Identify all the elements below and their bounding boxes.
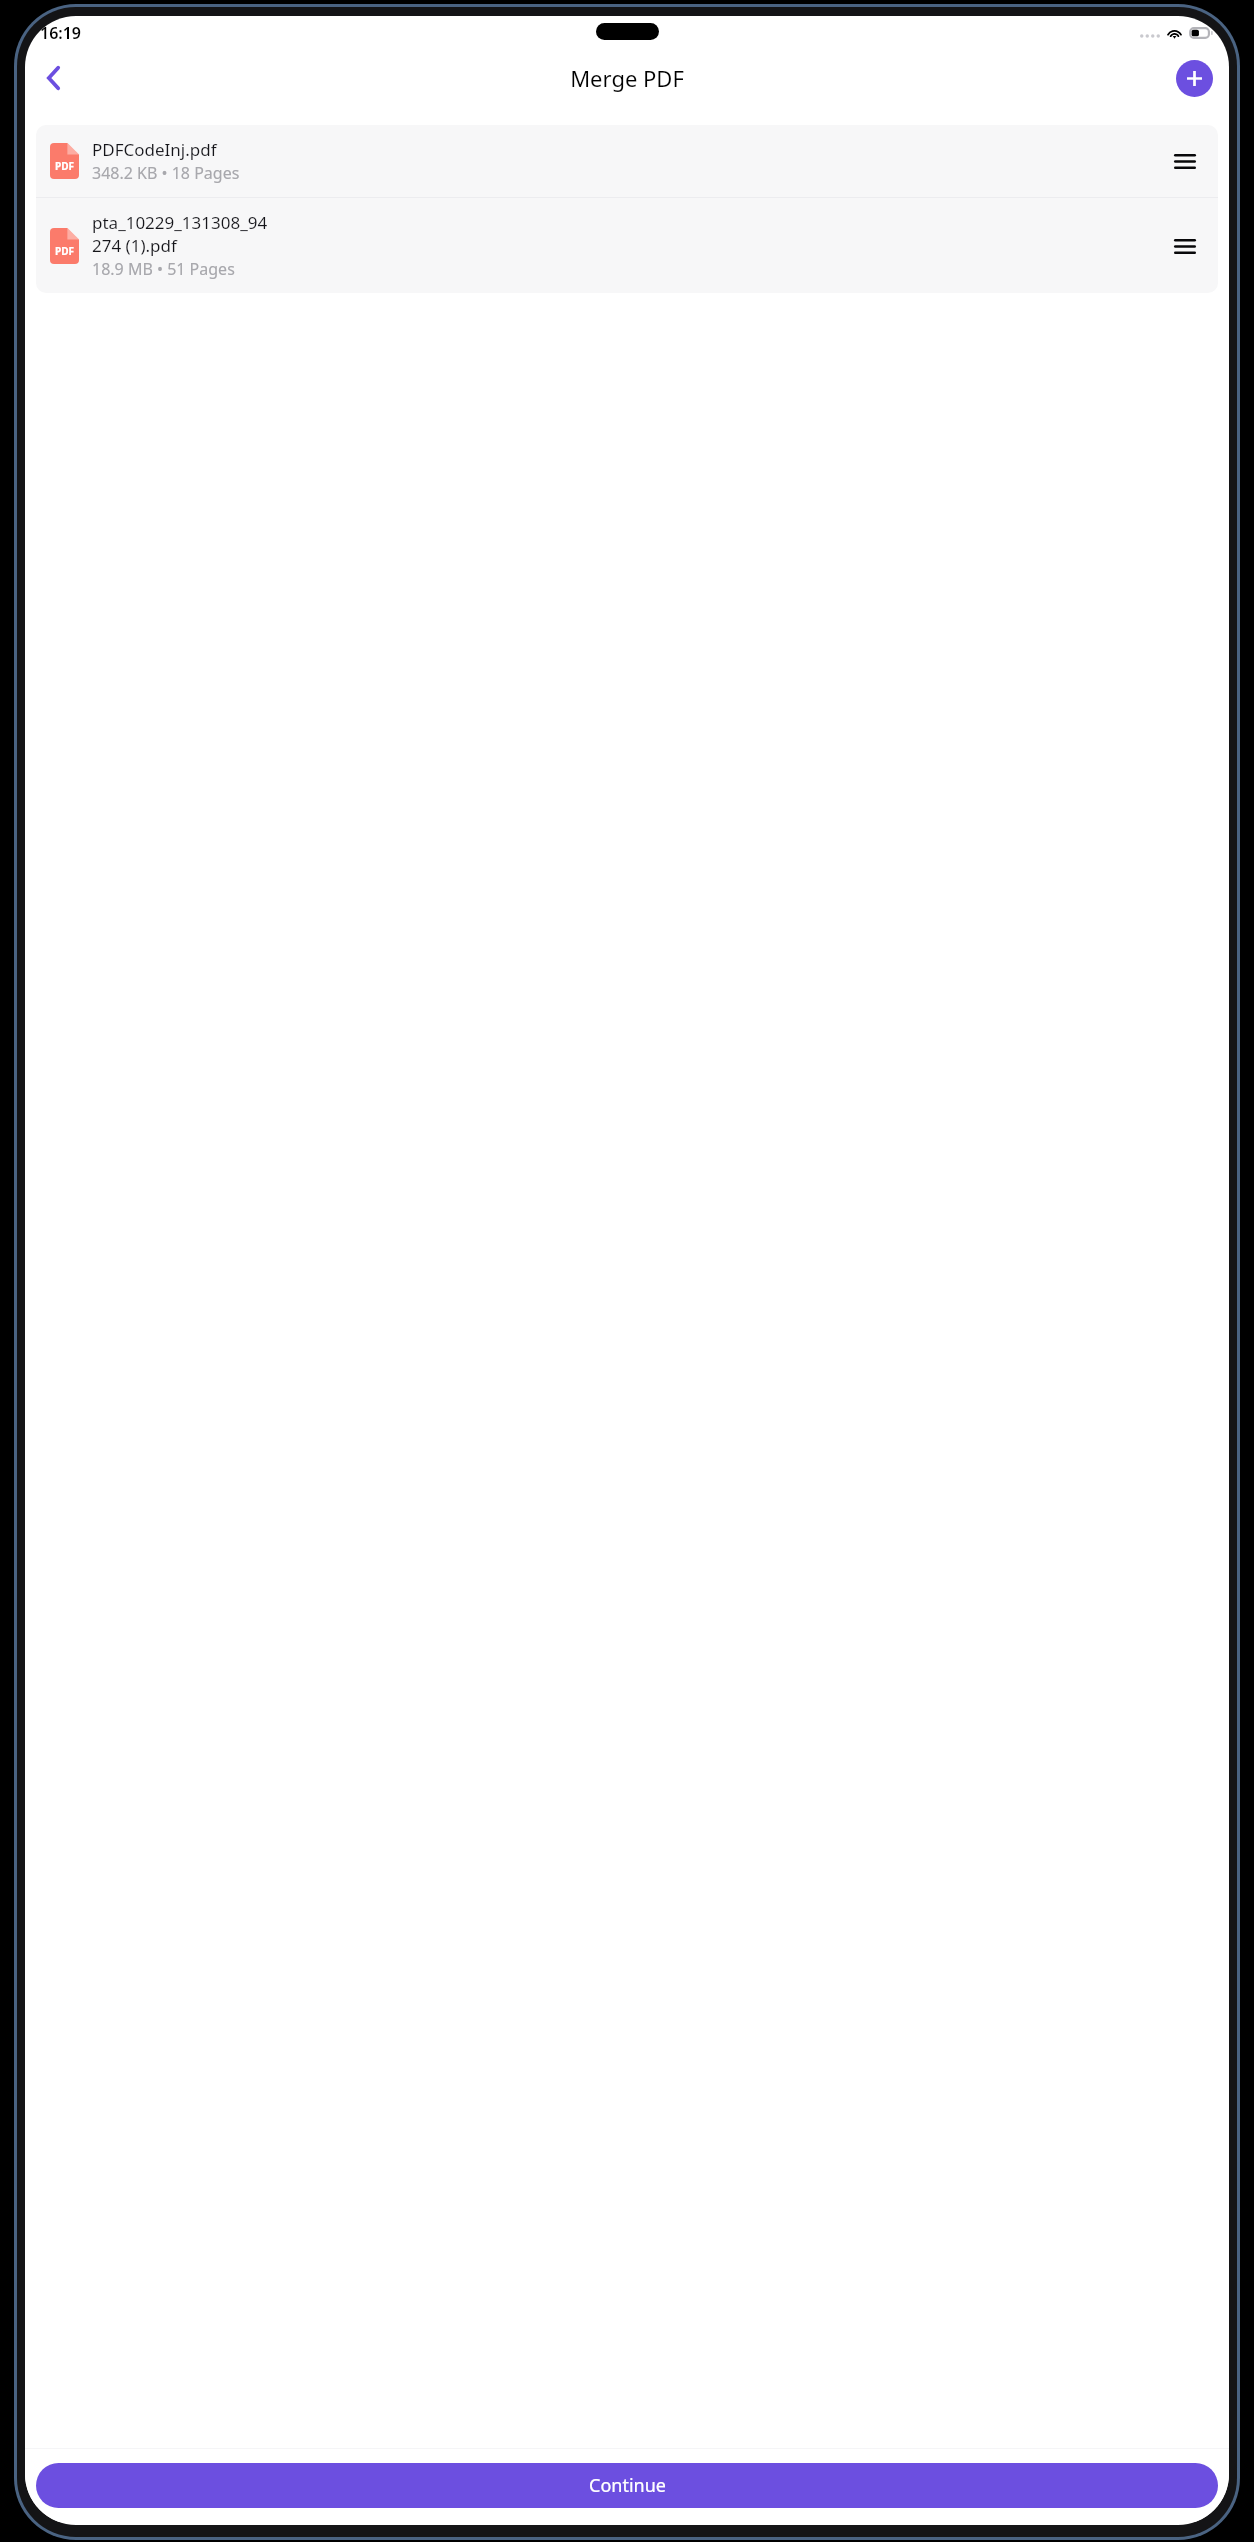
button[interactable]: Back (30, 55, 76, 101)
button[interactable]: Reorder (1163, 224, 1207, 268)
staticText: 274 (1).pdf (92, 234, 177, 257)
staticText: 348.2 KB • 18 Pages (92, 162, 240, 184)
button[interactable]: Reorder (1163, 139, 1207, 183)
staticText: Continue (589, 2473, 666, 2498)
staticText: 18.9 MB • 51 Pages (92, 258, 235, 280)
staticText: PDF (55, 159, 75, 173)
button[interactable]: PDF (36, 198, 1218, 293)
staticText: PDFCodeInj.pdf (92, 138, 217, 161)
button[interactable]: Add file (1176, 60, 1213, 97)
staticText: 16:19 (40, 22, 82, 44)
staticText: PDF (55, 244, 75, 258)
button[interactable]: Continue (36, 2463, 1218, 2508)
button[interactable]: PDF (36, 125, 1218, 197)
staticText: Merge PDF (570, 63, 684, 93)
staticText: pta_10229_131308_94 (92, 211, 268, 234)
